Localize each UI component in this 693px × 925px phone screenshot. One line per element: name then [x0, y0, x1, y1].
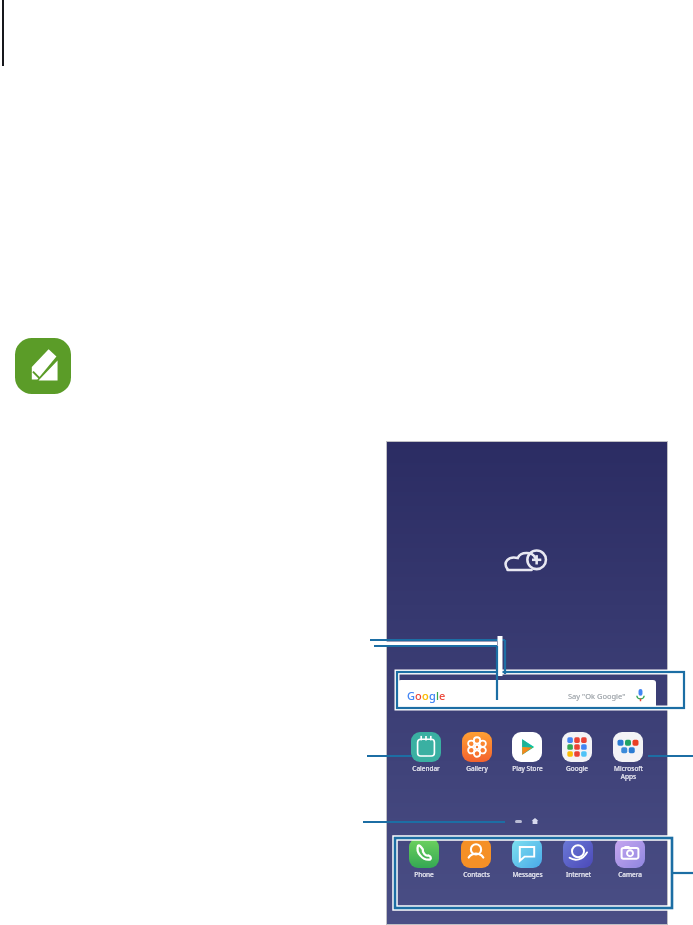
staticText: Contacts [463, 870, 490, 879]
staticText: Google [566, 764, 588, 773]
button[interactable]: Messages [505, 838, 549, 879]
button[interactable]: Microsoft Apps [606, 732, 650, 781]
staticText: Calendar [412, 764, 440, 773]
staticText: Messages [512, 870, 543, 879]
staticText: Microsoft Apps [614, 764, 643, 781]
button[interactable]: Google [555, 732, 599, 773]
staticText: g [429, 688, 436, 703]
button[interactable]: G [398, 680, 656, 710]
staticText: l [436, 688, 439, 703]
button[interactable]: Internet [556, 838, 600, 879]
staticText: Internet [566, 870, 591, 879]
button[interactable]: Phone [402, 838, 446, 879]
button[interactable]: Contacts [454, 838, 498, 879]
button[interactable]: Camera [608, 838, 652, 879]
staticText: Say "Ok Google" [568, 691, 626, 701]
button[interactable]: Play Store [505, 732, 549, 773]
button[interactable]: Calendar [404, 732, 448, 773]
staticText: o [415, 688, 422, 703]
staticText: G [407, 688, 415, 703]
staticText: e [439, 688, 446, 703]
staticText: o [422, 688, 429, 703]
staticText: Phone [414, 870, 434, 879]
staticText: Camera [618, 870, 642, 879]
button[interactable]: Gallery [455, 732, 499, 773]
staticText: Play Store [512, 764, 543, 773]
staticText: Gallery [466, 764, 488, 773]
